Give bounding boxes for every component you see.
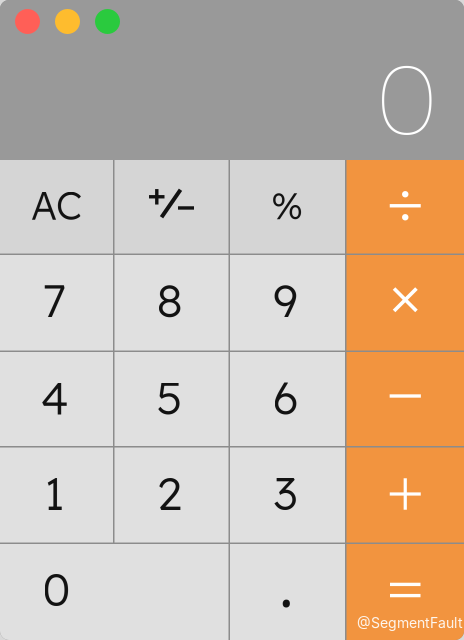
button[interactable]: Multiply <box>346 255 464 350</box>
staticText: 0 <box>42 561 70 617</box>
button[interactable]: Close window <box>15 9 40 34</box>
button[interactable]: % <box>230 160 345 253</box>
staticText: % <box>271 182 303 229</box>
button[interactable]: Equals <box>346 544 464 640</box>
staticText: @SegmentFault <box>357 614 463 631</box>
button[interactable]: Divide <box>346 160 464 253</box>
button[interactable]: 6 <box>230 352 345 446</box>
button[interactable]: 7 <box>0 255 113 350</box>
button[interactable]: AC <box>0 160 113 253</box>
button[interactable]: 3 <box>230 447 345 542</box>
button[interactable]: Zoom window <box>95 9 120 34</box>
staticText: 4 <box>40 369 68 426</box>
button[interactable]: 1 <box>0 447 113 542</box>
button[interactable]: 9 <box>230 255 345 350</box>
staticText: 7 <box>43 272 66 329</box>
staticText: 5 <box>156 369 182 426</box>
staticText: 0 <box>377 38 437 158</box>
staticText: 2 <box>157 465 182 521</box>
staticText: . <box>279 543 294 623</box>
staticText: 8 <box>156 272 182 329</box>
staticText: 6 <box>272 369 298 426</box>
button[interactable]: Subtract <box>346 352 464 446</box>
button[interactable]: 8 <box>114 255 228 350</box>
staticText: AC <box>31 181 82 229</box>
button[interactable]: Add <box>346 447 464 542</box>
button[interactable]: 0 <box>0 544 228 640</box>
button[interactable]: Minimize window <box>55 9 80 34</box>
button[interactable]: Plus minus <box>114 160 228 253</box>
staticText: 1 <box>44 465 65 521</box>
button[interactable]: . <box>230 544 345 640</box>
staticText: 3 <box>273 465 297 521</box>
button[interactable]: 4 <box>0 352 113 446</box>
button[interactable]: 5 <box>114 352 228 446</box>
staticText: 9 <box>273 272 298 329</box>
button[interactable]: 2 <box>114 447 228 542</box>
